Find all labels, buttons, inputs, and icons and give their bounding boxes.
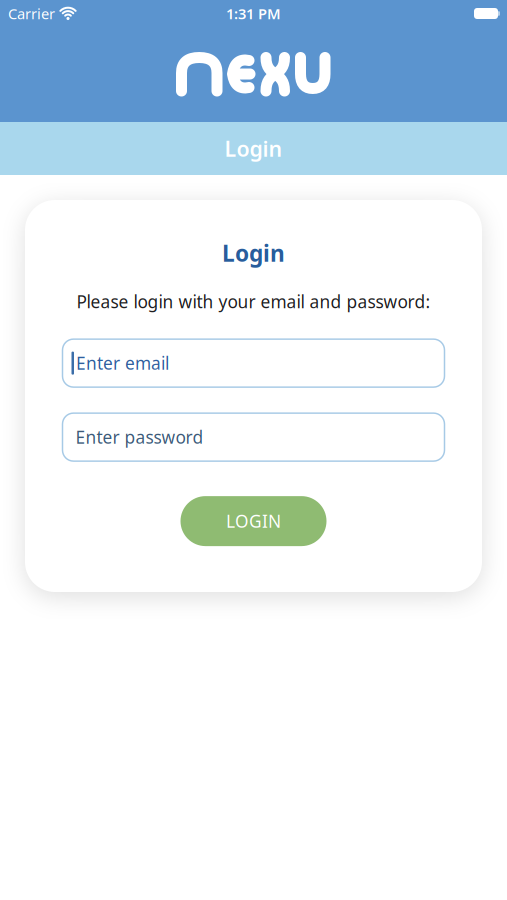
staticText: 1:31 PM <box>226 4 281 23</box>
staticText: LOGIN <box>226 510 281 533</box>
staticText: Carrier <box>8 4 55 23</box>
button[interactable]: Enter password <box>62 413 444 461</box>
staticText: Enter password <box>75 426 203 449</box>
staticText: Login <box>222 238 285 268</box>
button[interactable]: Enter email <box>62 339 444 387</box>
staticText: Please login with your email and passwor… <box>76 290 430 313</box>
staticText: Login <box>224 134 282 163</box>
button[interactable]: LOGIN <box>180 496 326 546</box>
staticText: Enter email <box>76 352 169 375</box>
